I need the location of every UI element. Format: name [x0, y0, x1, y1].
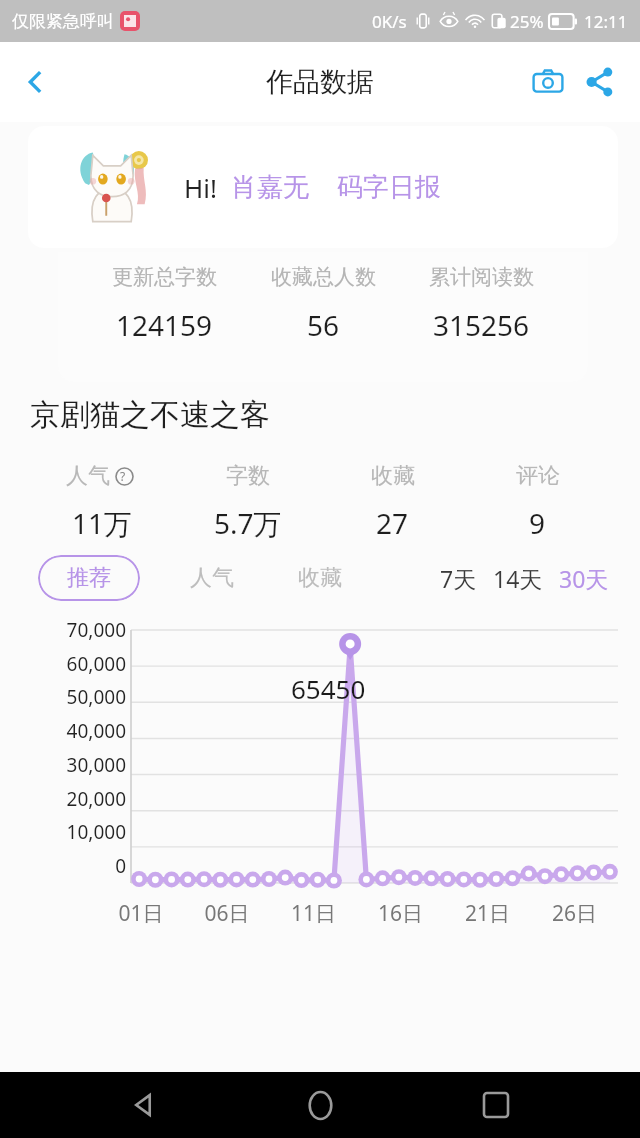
staticText: 65450 — [291, 671, 366, 706]
staticText: 315256 — [433, 306, 530, 344]
button[interactable]: Back — [8, 54, 64, 110]
button[interactable]: Camera — [522, 56, 574, 108]
staticText: 作品数据 — [266, 65, 374, 99]
staticText: 人气 — [190, 564, 234, 592]
staticText: 肖嘉无 — [231, 171, 309, 204]
staticText: 仅限紧急呼叫 — [12, 11, 114, 32]
staticText: 0 — [14, 853, 126, 879]
staticText: 16日 — [357, 899, 444, 928]
staticText: 人气 — [66, 462, 110, 490]
staticText: 累计阅读数 — [429, 264, 534, 290]
staticText: 9 — [529, 504, 546, 542]
staticText: 码字日报 — [337, 171, 441, 204]
button[interactable]: Hi! — [28, 126, 618, 248]
button[interactable]: 推荐 — [38, 555, 140, 601]
button[interactable]: 字数 — [175, 462, 320, 542]
staticText: 40,000 — [14, 718, 126, 744]
staticText: 推荐 — [67, 564, 111, 592]
button[interactable]: 更新总字数 — [58, 252, 588, 382]
staticText: 27 — [376, 504, 409, 542]
staticText: 字数 — [226, 462, 270, 490]
staticText: 26日 — [531, 899, 618, 928]
staticText: 56 — [307, 306, 340, 344]
staticText: 50,000 — [14, 684, 126, 710]
button[interactable]: 7天 — [437, 563, 480, 594]
staticText: 0K/s — [372, 10, 407, 33]
staticText: 更新总字数 — [112, 264, 217, 290]
staticText: 12:11 — [584, 10, 628, 33]
staticText: 70,000 — [14, 617, 126, 643]
staticText: 10,000 — [14, 819, 126, 845]
staticText: 收藏 — [371, 462, 415, 490]
staticText: 5.7万 — [214, 504, 282, 542]
staticText: 30天 — [559, 563, 609, 594]
staticText: 124159 — [116, 306, 213, 344]
staticText: 7天 — [440, 563, 477, 594]
staticText: ? — [120, 468, 126, 484]
button[interactable]: 收藏 — [292, 558, 348, 598]
staticText: 14天 — [493, 563, 543, 594]
staticText: 21日 — [444, 899, 531, 928]
button[interactable]: 评论 — [465, 462, 610, 542]
staticText: 京剧猫之不速之客 — [30, 396, 270, 434]
staticText: 60,000 — [14, 651, 126, 677]
staticText: 收藏 — [298, 564, 342, 592]
button[interactable]: 收藏 — [320, 462, 465, 542]
staticText: Hi! — [184, 170, 217, 205]
button[interactable]: 14天 — [490, 563, 546, 594]
staticText: 11万 — [72, 504, 133, 542]
button[interactable]: 人气 — [30, 462, 175, 542]
button[interactable]: Recents — [464, 1073, 528, 1137]
staticText: 收藏总人数 — [271, 264, 376, 290]
button[interactable]: 人气 — [184, 558, 240, 598]
staticText: 20,000 — [14, 786, 126, 812]
staticText: 01日 — [98, 899, 184, 928]
staticText: 评论 — [516, 462, 560, 490]
button[interactable]: Home — [288, 1073, 352, 1137]
staticText: 25% — [510, 10, 544, 33]
button[interactable]: Back — [112, 1073, 176, 1137]
staticText: 06日 — [184, 899, 270, 928]
button[interactable]: Share — [574, 56, 626, 108]
staticText: 11日 — [270, 899, 357, 928]
staticText: 30,000 — [14, 752, 126, 778]
button[interactable]: 30天 — [556, 563, 612, 594]
